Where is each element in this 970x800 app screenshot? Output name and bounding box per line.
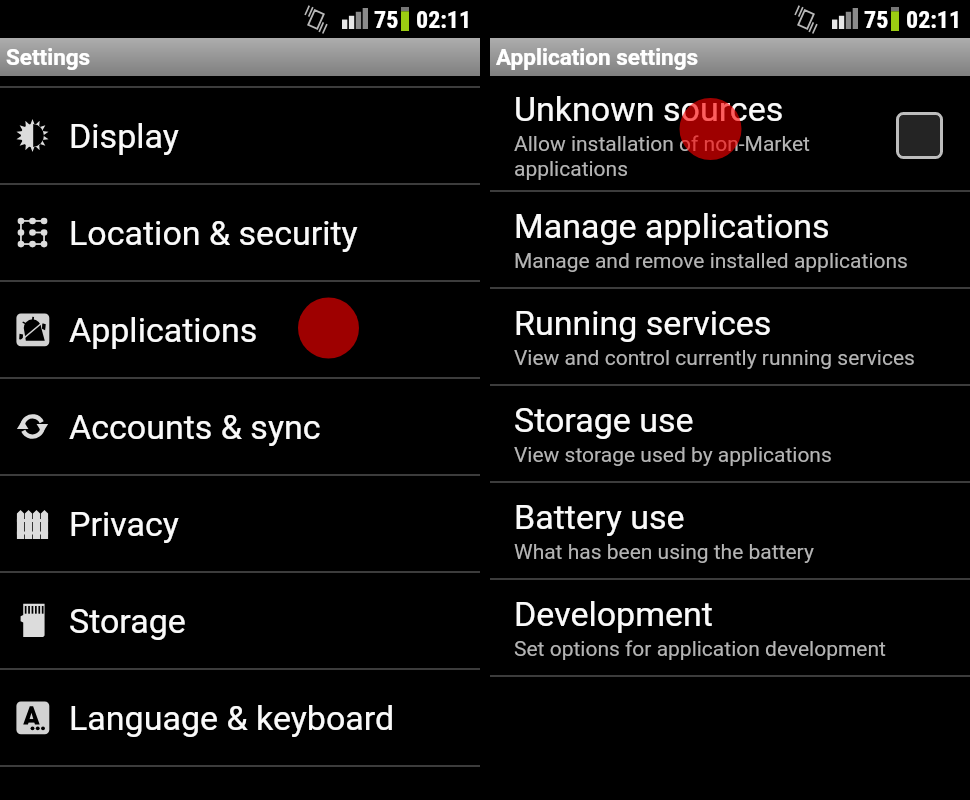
button[interactable]: Language & keyboard (0, 670, 480, 765)
staticText: Display (69, 116, 179, 156)
button[interactable]: Running services (490, 289, 970, 384)
staticText: Applications (69, 310, 258, 350)
button[interactable]: Storage (0, 573, 480, 668)
staticText: Storage (69, 601, 186, 641)
staticText: What has been using the battery (514, 540, 814, 565)
button[interactable]: Privacy (0, 476, 480, 571)
staticText: Battery use (514, 497, 685, 537)
button[interactable]: Battery use (490, 483, 970, 578)
staticText: Unknown sources (514, 89, 784, 129)
button[interactable]: Applications (0, 282, 480, 377)
staticText: Manage applications (514, 206, 830, 246)
button[interactable]: Storage use (490, 386, 970, 481)
staticText: 75 (374, 6, 399, 34)
button[interactable]: Unknown sources checkbox (896, 112, 943, 159)
staticText: Privacy (69, 504, 179, 544)
staticText: Set options for application development (514, 637, 886, 662)
staticText: 02:11 (906, 6, 962, 34)
staticText: Application settings (496, 44, 699, 70)
button[interactable]: Display (0, 88, 480, 183)
button[interactable]: Location & security (0, 185, 480, 280)
button[interactable]: Unknown sources (490, 79, 970, 191)
staticText: Accounts & sync (69, 407, 321, 447)
staticText: 02:11 (416, 6, 472, 34)
button[interactable]: Manage applications (490, 192, 970, 287)
staticText: Settings (6, 44, 91, 70)
button[interactable]: Accounts & sync (0, 379, 480, 474)
staticText: applications (514, 157, 629, 182)
staticText: Manage and remove installed applications (514, 249, 908, 274)
staticText: Location & security (69, 213, 358, 253)
staticText: Allow installation of non-Market (514, 132, 810, 157)
staticText: View and control currently running servi… (514, 346, 915, 371)
staticText: View storage used by applications (514, 443, 832, 468)
staticText: 75 (864, 6, 889, 34)
staticText: Development (514, 594, 713, 634)
staticText: Storage use (514, 400, 694, 440)
staticText: Language & keyboard (69, 698, 395, 738)
staticText: Running services (514, 303, 772, 343)
button[interactable]: Development (490, 580, 970, 675)
